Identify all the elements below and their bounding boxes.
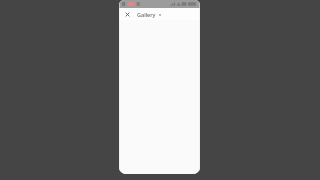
staticText: Gallery	[137, 11, 156, 18]
button[interactable]: Close	[122, 9, 132, 19]
button[interactable]: Gallery	[136, 10, 163, 19]
